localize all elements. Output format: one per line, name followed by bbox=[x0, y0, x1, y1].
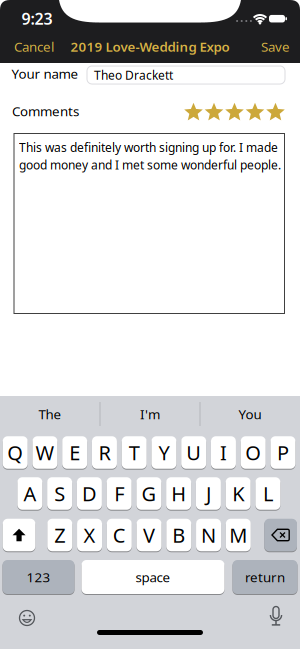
staticText: Z bbox=[54, 522, 65, 548]
button[interactable]: I'm bbox=[101, 399, 199, 429]
staticText: X bbox=[83, 522, 95, 548]
button[interactable]: E bbox=[62, 436, 87, 469]
staticText: P bbox=[277, 439, 289, 466]
staticText: Cancel bbox=[14, 38, 54, 55]
button[interactable]: Rating: 5 stars bbox=[184, 102, 285, 122]
button[interactable]: K bbox=[226, 477, 251, 510]
button[interactable]: Z bbox=[47, 518, 72, 552]
staticText: space bbox=[135, 568, 170, 586]
staticText: S bbox=[54, 480, 65, 507]
staticText: The bbox=[38, 405, 61, 423]
button[interactable]: Dictation bbox=[264, 605, 288, 629]
staticText: This was definitely worth signing up for… bbox=[19, 139, 278, 155]
staticText: B bbox=[172, 522, 185, 548]
button[interactable]: space bbox=[81, 559, 224, 594]
staticText: V bbox=[143, 522, 155, 548]
button[interactable]: W bbox=[32, 436, 57, 469]
button[interactable]: X bbox=[77, 518, 102, 552]
button[interactable]: M bbox=[226, 518, 251, 552]
staticText: O bbox=[245, 439, 261, 466]
staticText: G bbox=[141, 480, 156, 507]
staticText: good money and I met some wonderful peop… bbox=[19, 157, 281, 173]
staticText: Y bbox=[158, 439, 169, 466]
staticText: U bbox=[186, 439, 201, 466]
button[interactable]: This was definitely worth signing up for… bbox=[14, 133, 284, 313]
staticText: 9:23 bbox=[21, 8, 52, 29]
button[interactable]: R bbox=[92, 436, 117, 469]
staticText: Save bbox=[261, 38, 290, 55]
staticText: return bbox=[245, 568, 285, 586]
button[interactable]: Y bbox=[151, 436, 176, 469]
staticText: 123 bbox=[26, 568, 50, 586]
staticText: A bbox=[23, 480, 36, 507]
staticText: Your name bbox=[11, 65, 78, 82]
button[interactable]: D bbox=[77, 477, 102, 510]
button[interactable]: Cancel bbox=[14, 38, 54, 55]
button[interactable]: B bbox=[166, 518, 191, 552]
button[interactable]: H bbox=[166, 477, 191, 510]
staticText: N bbox=[201, 522, 216, 548]
staticText: 2019 Love-Wedding Expo bbox=[70, 38, 229, 55]
staticText: J bbox=[206, 480, 211, 507]
button[interactable]: return bbox=[232, 559, 297, 594]
button[interactable]: Emoji bbox=[15, 606, 39, 630]
staticText: F bbox=[114, 480, 124, 507]
staticText: I bbox=[220, 439, 227, 466]
button[interactable]: I bbox=[211, 436, 236, 469]
staticText: E bbox=[69, 439, 80, 466]
button[interactable]: A bbox=[17, 477, 42, 510]
staticText: Comments bbox=[12, 102, 79, 120]
staticText: C bbox=[113, 522, 126, 548]
staticText: D bbox=[82, 480, 97, 507]
button[interactable]: The bbox=[1, 399, 99, 429]
button[interactable]: Save bbox=[261, 38, 290, 55]
staticText: You bbox=[238, 405, 261, 423]
staticText: I'm bbox=[140, 405, 160, 423]
staticText: Q bbox=[7, 439, 23, 466]
staticText: R bbox=[98, 439, 110, 466]
button[interactable]: You bbox=[201, 399, 299, 429]
button[interactable]: G bbox=[136, 477, 161, 510]
button[interactable]: Q bbox=[3, 436, 28, 469]
staticText: Theo Drackett bbox=[94, 67, 173, 83]
button[interactable]: J bbox=[196, 477, 221, 510]
button[interactable]: U bbox=[181, 436, 206, 469]
staticText: K bbox=[232, 480, 244, 507]
button[interactable]: F bbox=[107, 477, 132, 510]
button[interactable]: O bbox=[241, 436, 266, 469]
button[interactable]: P bbox=[270, 436, 295, 469]
staticText: L bbox=[263, 480, 273, 507]
button[interactable]: Theo Drackett bbox=[87, 66, 285, 84]
button[interactable]: C bbox=[107, 518, 132, 552]
button[interactable]: S bbox=[47, 477, 72, 510]
staticText: W bbox=[35, 439, 54, 466]
button[interactable]: Shift bbox=[3, 518, 35, 552]
staticText: T bbox=[129, 439, 140, 466]
button[interactable]: Delete bbox=[264, 518, 297, 552]
staticText: M bbox=[229, 522, 247, 548]
button[interactable]: 123 bbox=[2, 559, 74, 594]
button[interactable]: T bbox=[122, 436, 147, 469]
staticText: H bbox=[171, 480, 186, 507]
button[interactable]: L bbox=[255, 477, 280, 510]
button[interactable]: N bbox=[196, 518, 221, 552]
button[interactable]: V bbox=[137, 518, 162, 552]
